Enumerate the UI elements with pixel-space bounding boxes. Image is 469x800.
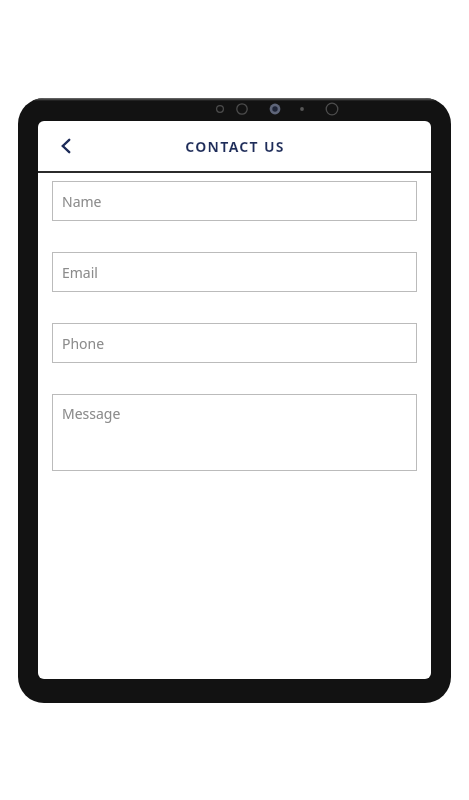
button[interactable]: Name	[52, 181, 417, 221]
button[interactable]: Phone	[52, 323, 417, 363]
staticText: Phone	[62, 334, 105, 353]
staticText: CONTACT US	[185, 137, 285, 156]
staticText: Email	[62, 263, 98, 282]
staticText: Name	[62, 192, 102, 211]
button[interactable]: Email	[52, 252, 417, 292]
button[interactable]: Message	[52, 394, 417, 471]
button[interactable]: Back	[46, 126, 86, 166]
staticText: Message	[62, 404, 121, 423]
